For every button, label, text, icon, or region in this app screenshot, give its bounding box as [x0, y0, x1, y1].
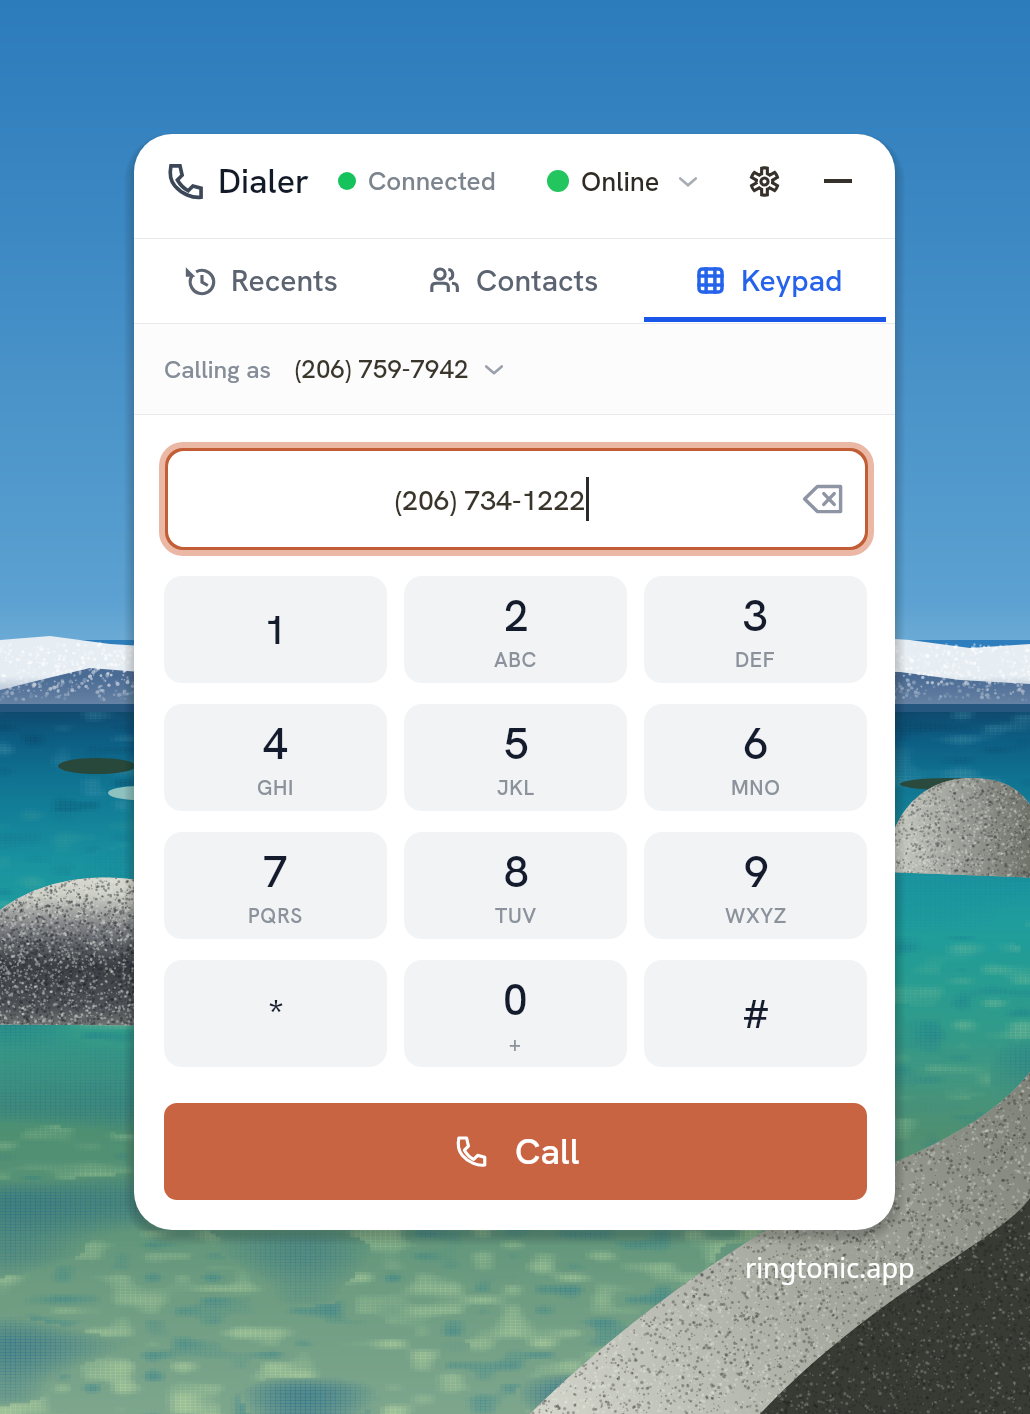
- button[interactable]: 2: [404, 576, 627, 683]
- button[interactable]: Online: [547, 134, 713, 228]
- button[interactable]: 7: [164, 832, 387, 939]
- button[interactable]: 3: [644, 576, 867, 683]
- button[interactable]: 0: [404, 960, 627, 1067]
- staticText: PQRS: [248, 902, 303, 929]
- staticText: #: [742, 988, 770, 1040]
- staticText: DEF: [735, 646, 776, 673]
- staticText: 9: [744, 843, 769, 900]
- button[interactable]: *: [164, 960, 387, 1067]
- staticText: 1: [264, 604, 287, 656]
- staticText: ringtonic.app: [745, 1249, 915, 1286]
- staticText: (206) 759-7942: [295, 352, 469, 386]
- button[interactable]: Minimize: [810, 134, 866, 228]
- button[interactable]: Contacts: [387, 238, 641, 323]
- button[interactable]: 9: [644, 832, 867, 939]
- staticText: Keypad: [741, 261, 843, 300]
- staticText: Online: [581, 164, 660, 199]
- staticText: 6: [744, 715, 769, 772]
- staticText: 4: [263, 715, 288, 772]
- button[interactable]: Call: [164, 1103, 867, 1200]
- staticText: ABC: [494, 646, 538, 673]
- button[interactable]: 5: [404, 704, 627, 811]
- staticText: Contacts: [476, 261, 599, 300]
- button[interactable]: 4: [164, 704, 387, 811]
- button[interactable]: Settings: [736, 134, 792, 228]
- button[interactable]: 6: [644, 704, 867, 811]
- staticText: 8: [504, 843, 529, 900]
- staticText: +: [509, 1030, 522, 1057]
- staticText: *: [268, 988, 284, 1040]
- staticText: WXYZ: [725, 902, 787, 929]
- staticText: 5: [504, 715, 529, 772]
- button[interactable]: Keypad: [641, 238, 895, 323]
- staticText: Dialer: [218, 159, 310, 203]
- staticText: (206) 734-1222: [395, 481, 586, 518]
- button[interactable]: Recents: [134, 238, 387, 323]
- staticText: Connected: [368, 164, 496, 198]
- button[interactable]: Backspace: [803, 484, 843, 514]
- button[interactable]: 1: [164, 576, 387, 683]
- button[interactable]: (206) 734-1222: [168, 451, 865, 547]
- staticText: 2: [504, 587, 529, 644]
- button[interactable]: #: [644, 960, 867, 1067]
- button[interactable]: 8: [404, 832, 627, 939]
- staticText: MNO: [731, 774, 781, 801]
- staticText: TUV: [495, 902, 537, 929]
- staticText: 0: [503, 971, 528, 1028]
- staticText: Recents: [231, 261, 338, 300]
- staticText: GHI: [257, 774, 294, 801]
- button[interactable]: (206) 759-7942: [295, 342, 507, 396]
- staticText: JKL: [497, 774, 535, 801]
- staticText: 3: [743, 587, 768, 644]
- staticText: 7: [263, 843, 288, 900]
- staticText: Calling as: [164, 353, 271, 385]
- staticText: Call: [515, 1128, 580, 1175]
